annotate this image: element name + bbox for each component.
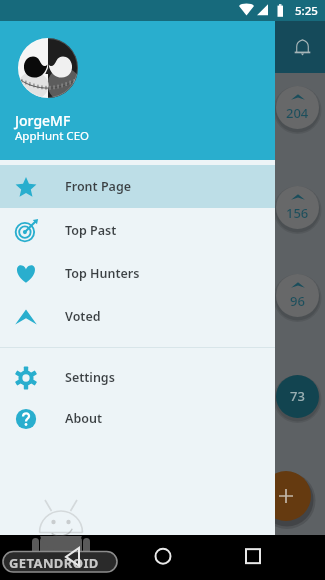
button[interactable]: 73 (276, 375, 319, 418)
staticText: Top Hunters (65, 265, 140, 282)
staticText: Top Past (65, 222, 117, 239)
staticText: Voted (65, 308, 101, 325)
staticText: 204 (286, 104, 309, 122)
button[interactable]: Top Past (0, 209, 275, 252)
button[interactable]: Notifications (288, 33, 316, 61)
button[interactable]: Settings (0, 356, 275, 399)
staticText: 96 (290, 292, 305, 310)
staticText: GETANDROID (9, 554, 99, 572)
button[interactable]: 204 (276, 86, 319, 129)
staticText: JorgeMF (15, 111, 71, 130)
staticText: AppHunt CEO (15, 128, 90, 144)
staticText: Settings (65, 369, 115, 386)
button[interactable]: About (0, 397, 275, 440)
button[interactable]: 96 (276, 274, 319, 317)
staticText: About (65, 410, 102, 427)
staticText: 156 (286, 204, 309, 222)
staticText: 5:25 (295, 3, 318, 19)
staticText: 73 (290, 387, 305, 405)
button[interactable]: Back (60, 546, 86, 572)
button[interactable]: Front Page (0, 165, 275, 208)
button[interactable]: Top Hunters (0, 252, 275, 295)
button[interactable]: Add (261, 471, 311, 521)
button[interactable]: 156 (276, 186, 319, 229)
staticText: Front Page (65, 178, 132, 195)
button[interactable]: Voted (0, 295, 275, 338)
